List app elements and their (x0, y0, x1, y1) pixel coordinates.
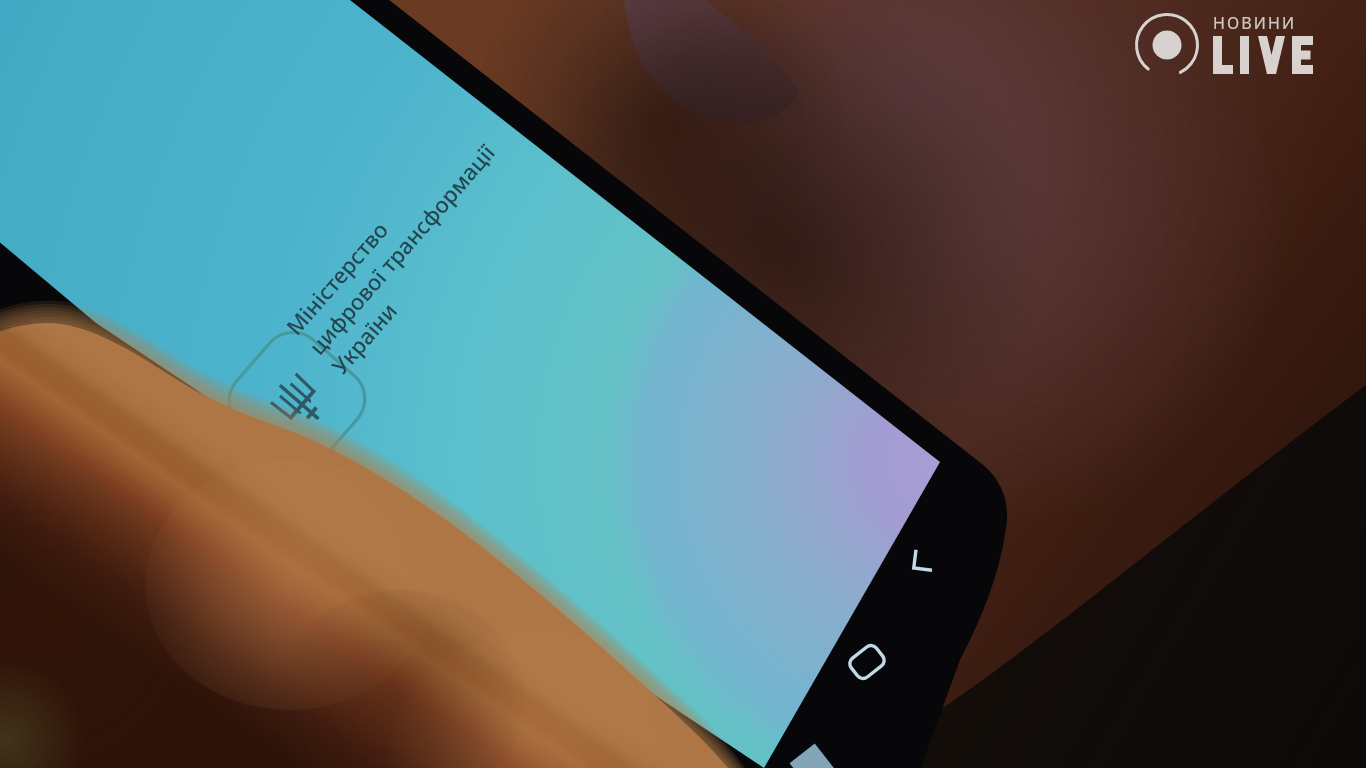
staticText: України (324, 295, 403, 380)
button[interactable]: Novyny LIVE (1130, 0, 1366, 95)
staticText: НОВИНИ (1213, 12, 1297, 34)
staticText: Міністерство (279, 215, 394, 341)
staticText: цифрової трансформації (302, 138, 501, 360)
